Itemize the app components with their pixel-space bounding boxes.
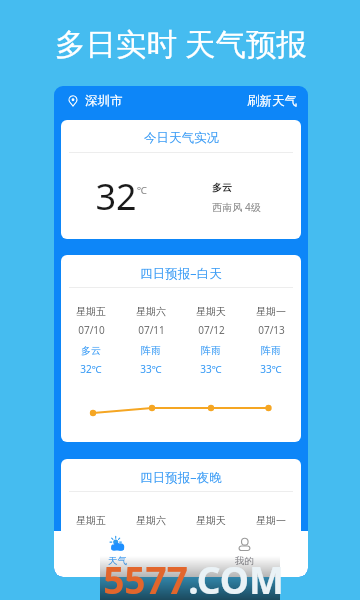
staticText: 多日实时 天气预报 <box>55 22 307 64</box>
button[interactable]: 天气 <box>54 531 181 577</box>
button[interactable]: 我的 <box>181 531 308 577</box>
staticText: 阵雨 <box>261 344 281 357</box>
staticText: 星期六 <box>136 514 166 527</box>
staticText: 星期天 <box>196 305 226 318</box>
staticText: 多云 <box>212 181 232 194</box>
staticText: 四日预报–白天 <box>140 265 222 282</box>
staticText: 我的 <box>235 555 254 567</box>
staticText: 阵雨 <box>141 344 161 357</box>
staticText: 星期六 <box>136 305 166 318</box>
staticText: 多云 <box>81 344 101 357</box>
staticText: 深圳市 <box>85 93 123 109</box>
staticText: 星期五 <box>76 305 106 318</box>
button[interactable]: 深圳市 <box>67 93 123 109</box>
staticText: 33℃ <box>260 362 282 376</box>
staticText: 33℃ <box>140 362 162 376</box>
button[interactable]: 刷新天气 <box>247 93 297 109</box>
staticText: 32 <box>95 172 137 221</box>
staticText: .COM <box>188 554 284 600</box>
staticText: ℃ <box>137 183 147 197</box>
staticText: 西南风 4级 <box>212 200 261 214</box>
staticText: 星期五 <box>76 514 106 527</box>
staticText: 刷新天气 <box>247 93 297 109</box>
staticText: 07/10 <box>78 323 105 337</box>
staticText: 32℃ <box>80 362 102 376</box>
staticText: 阵雨 <box>201 344 221 357</box>
staticText: 星期一 <box>256 305 286 318</box>
staticText: 07/13 <box>258 323 285 337</box>
staticText: 星期天 <box>196 514 226 527</box>
staticText: 今日天气实况 <box>144 130 219 146</box>
staticText: 四日预报–夜晚 <box>140 469 222 486</box>
staticText: 07/12 <box>198 323 225 337</box>
staticText: 33℃ <box>200 362 222 376</box>
staticText: 星期一 <box>256 514 286 527</box>
staticText: 天气 <box>108 555 127 567</box>
staticText: 5577 <box>103 554 188 600</box>
staticText: 07/11 <box>138 323 165 337</box>
